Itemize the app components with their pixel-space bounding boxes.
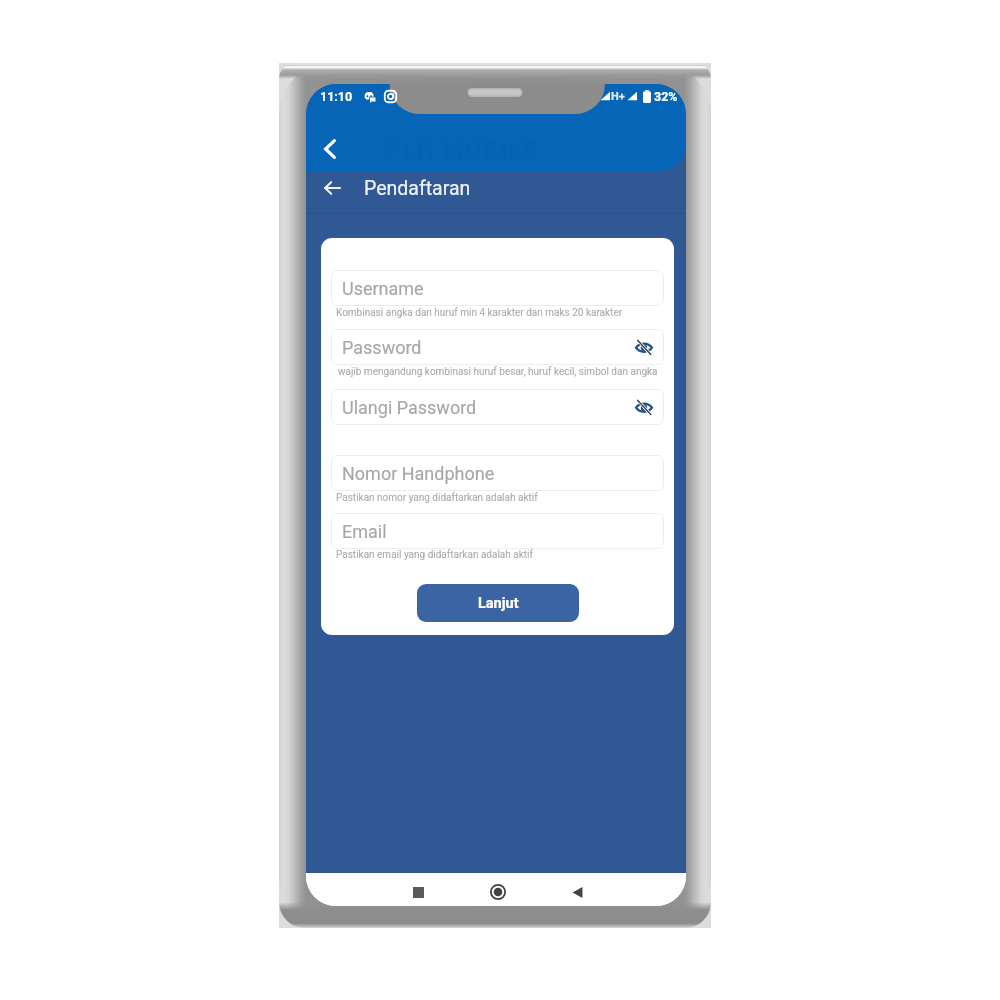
staticText: Kombinasi angka dan huruf min 4 karakter… — [336, 307, 623, 319]
staticText: Username — [342, 278, 424, 299]
staticText: Password — [342, 337, 422, 358]
staticText: Pastikan nomor yang didaftarkan adalah a… — [336, 492, 538, 504]
button[interactable]: Lanjut — [417, 584, 579, 622]
button[interactable]: Back — [557, 878, 597, 906]
button[interactable]: Username — [331, 270, 664, 306]
button[interactable]: Home — [478, 878, 518, 906]
staticText: Pendaftaran — [364, 177, 471, 200]
staticText: 32% — [654, 89, 678, 103]
staticText: wajib mengandung kombinasi huruf besar, … — [338, 366, 658, 378]
staticText: Lanjut — [478, 595, 519, 612]
staticText: Ulangi Password — [342, 397, 477, 418]
button[interactable]: Toggle password visibility — [633, 336, 655, 358]
staticText: 11:10 — [320, 89, 353, 103]
button[interactable]: Nomor Handphone — [331, 455, 664, 491]
button[interactable]: Toggle password visibility — [633, 396, 655, 418]
button[interactable]: Ulangi Password — [331, 389, 664, 425]
button[interactable]: Recent apps — [398, 878, 438, 906]
staticText: Email — [342, 521, 387, 542]
staticText: Nomor Handphone — [342, 463, 495, 484]
staticText: H+ — [611, 90, 625, 103]
button[interactable]: Back — [309, 128, 351, 170]
button[interactable]: Password — [331, 329, 664, 365]
staticText: Pastikan email yang didaftarkan adalah a… — [336, 549, 533, 561]
button[interactable]: Email — [331, 513, 664, 549]
button[interactable]: Navigate up — [316, 172, 348, 204]
